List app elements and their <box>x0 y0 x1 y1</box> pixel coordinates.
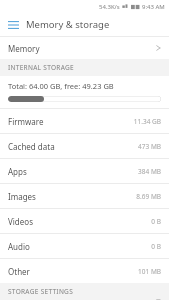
staticText: Firmware <box>8 116 133 127</box>
button[interactable]: Audio <box>0 234 169 258</box>
button[interactable]: Firmware <box>0 109 169 133</box>
staticText: Videos <box>8 216 151 227</box>
staticText: 11.34 GB <box>133 117 161 126</box>
staticText: 0 B <box>151 242 161 251</box>
button[interactable]: Open navigation menu <box>0 13 26 36</box>
staticText: Images <box>8 191 136 202</box>
staticText: Memory & storage <box>26 18 110 31</box>
staticText: Cached data <box>8 141 138 152</box>
staticText: Apps <box>8 166 138 177</box>
button[interactable]: Other <box>0 259 169 283</box>
staticText: Audio <box>8 241 151 252</box>
staticText: 54.3K/s <box>99 3 120 11</box>
staticText: Other <box>8 266 138 277</box>
button[interactable]: Memory <box>0 37 169 59</box>
staticText: 0 B <box>151 217 161 226</box>
staticText: 8.69 MB <box>136 192 161 201</box>
button[interactable]: Cached data <box>0 134 169 158</box>
button[interactable]: Apps <box>0 159 169 183</box>
staticText: 384 MB <box>138 167 161 176</box>
staticText: 473 MB <box>138 142 161 151</box>
staticText: INTERNAL STORAGE <box>8 63 74 72</box>
staticText: 101 MB <box>138 267 161 276</box>
button[interactable]: Videos <box>0 209 169 233</box>
staticText: Memory <box>8 43 156 54</box>
staticText: Total: 64.00 GB, free: 49.23 GB <box>8 81 114 91</box>
staticText: STORAGE SETTINGS <box>8 287 74 296</box>
button[interactable]: Images <box>0 184 169 208</box>
staticText: 9:43 AM <box>142 3 165 11</box>
